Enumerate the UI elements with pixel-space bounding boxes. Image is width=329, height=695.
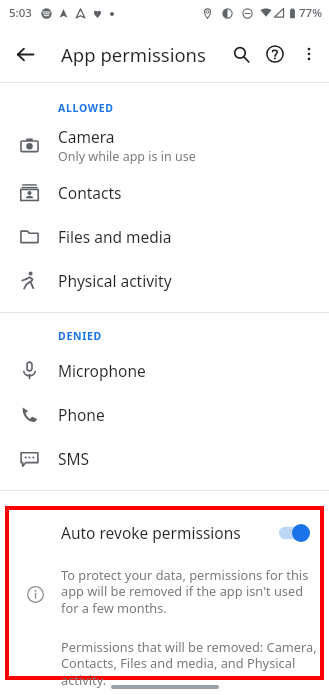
staticText: 77% — [299, 5, 322, 21]
staticText: ALLOWED — [58, 101, 114, 115]
button[interactable]: Search — [224, 37, 258, 71]
staticText: Auto revoke permissions — [61, 522, 279, 543]
staticText: To protect your data, permissions for th… — [61, 566, 323, 617]
button[interactable]: SMS — [0, 436, 329, 480]
button[interactable]: Microphone — [0, 348, 329, 392]
staticText: Microphone — [58, 360, 146, 381]
staticText: App permissions — [61, 42, 206, 67]
staticText: Physical activity — [58, 270, 172, 291]
button[interactable]: More options — [292, 37, 326, 71]
staticText: 5:03 — [9, 5, 32, 21]
button[interactable]: Camera — [0, 120, 329, 170]
staticText: SMS — [58, 448, 90, 469]
staticText: DENIED — [58, 329, 102, 343]
button[interactable]: Back — [8, 37, 43, 72]
button[interactable]: Physical activity — [0, 258, 329, 302]
button[interactable]: Contacts — [0, 170, 329, 214]
staticText: Permissions that will be removed: Camera… — [61, 638, 323, 689]
button[interactable]: Help — [258, 37, 292, 71]
staticText: Phone — [58, 404, 105, 425]
button[interactable]: Auto revoke permissions — [9, 510, 320, 555]
button[interactable]: Auto revoke permissions toggle — [279, 524, 310, 542]
staticText: Contacts — [58, 182, 122, 203]
staticText: Camera — [58, 126, 115, 147]
button[interactable]: Files and media — [0, 214, 329, 258]
staticText: Files and media — [58, 226, 172, 247]
button[interactable]: Phone — [0, 392, 329, 436]
staticText: Only while app is in use — [58, 148, 196, 165]
